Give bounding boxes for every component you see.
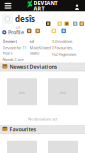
staticText: desîs [15,14,35,24]
staticText: Deviant for 11 Years [3,45,27,56]
staticText: 0 Deviations [52,38,73,44]
staticText: ART [33,5,44,12]
button[interactable]: deviantART [27,0,57,11]
staticText: Deviant [3,38,18,44]
staticText: Newest Deviations [9,63,57,70]
staticText: sd [15,24,19,30]
staticText: 152 Pageviews [52,51,77,57]
staticText: sd [30,38,35,44]
button[interactable]: Newest Deviations [0,62,85,71]
staticText: Favourites [9,126,36,133]
button[interactable]: Profile [2,29,24,35]
button[interactable]: Account [69,0,85,11]
button[interactable]: Favourites [0,125,85,134]
staticText: Needs Core Membership [3,57,26,67]
staticText: Male/United States [30,45,51,56]
staticText: DEVIANT [33,0,57,6]
button[interactable]: Menu [0,0,16,11]
staticText: No deviations yet [28,116,57,121]
staticText: Profile [8,29,24,36]
staticText: 0 Favourites [52,45,73,50]
